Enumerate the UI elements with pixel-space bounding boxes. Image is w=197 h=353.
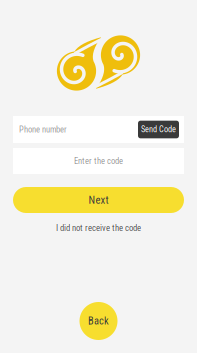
staticText: Back <box>88 315 109 327</box>
button[interactable]: Send Code <box>138 121 179 138</box>
button[interactable]: I did not receive the code <box>13 223 184 233</box>
staticText: Next <box>88 194 108 206</box>
staticText: Phone number <box>19 124 67 134</box>
staticText: I did not receive the code <box>56 223 141 233</box>
button[interactable]: Next <box>13 187 184 213</box>
staticText: Send Code <box>141 125 176 134</box>
staticText: Enter the code <box>74 156 123 166</box>
button[interactable]: Back <box>79 302 117 340</box>
